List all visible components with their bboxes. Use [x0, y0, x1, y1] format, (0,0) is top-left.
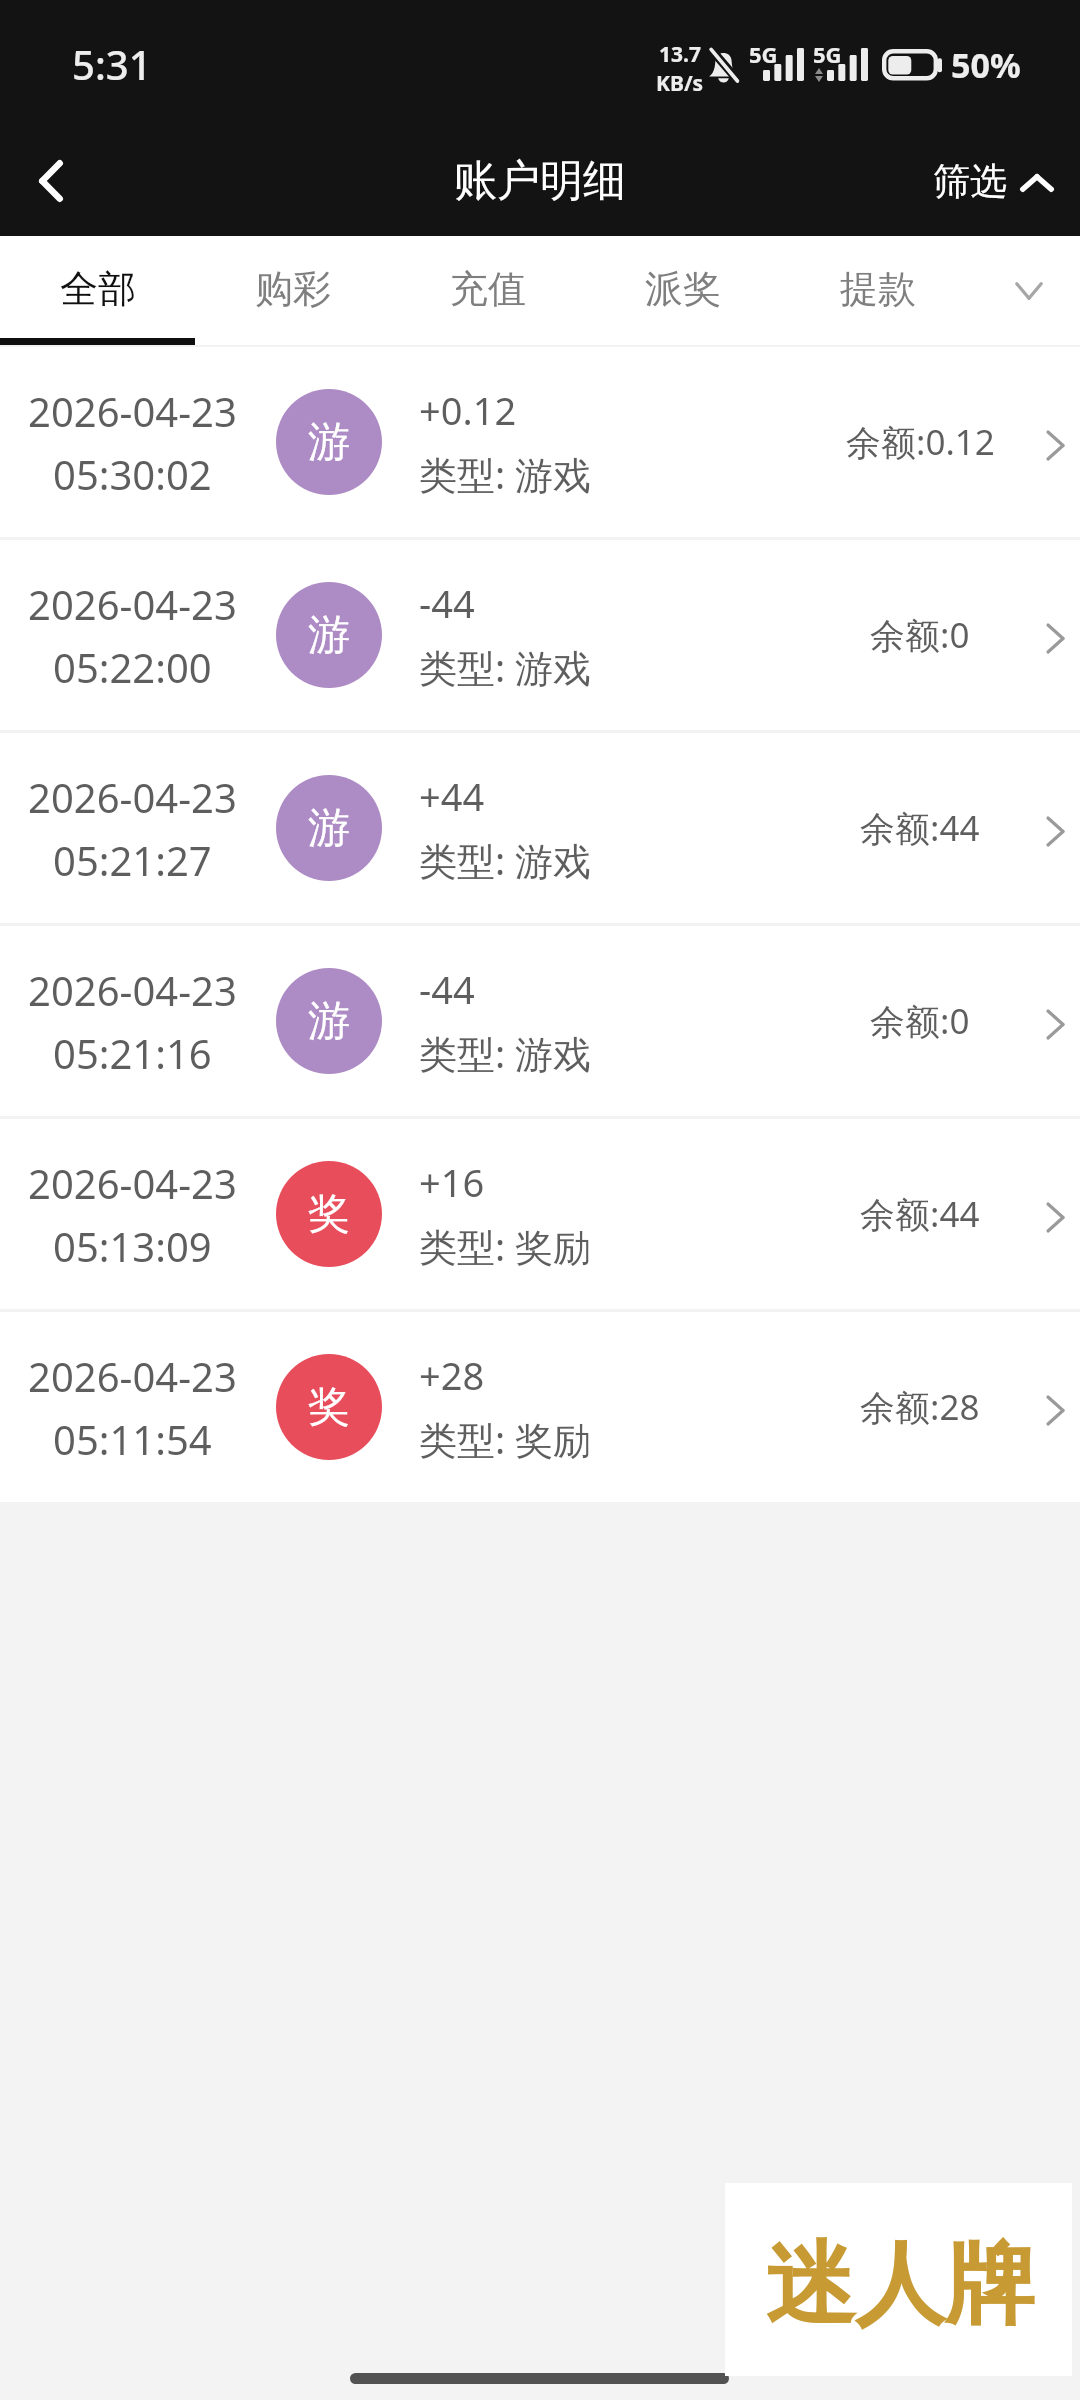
staticText: 5G: [749, 39, 778, 69]
staticText: 充值: [450, 265, 526, 313]
button[interactable]: 购彩: [195, 236, 390, 341]
staticText: 游: [308, 802, 350, 855]
staticText: -44: [419, 963, 475, 1015]
staticText: 05:21:27: [53, 833, 212, 887]
staticText: 余额:0: [870, 997, 970, 1045]
staticText: 提款: [840, 265, 916, 313]
staticText: 游: [308, 995, 350, 1048]
button[interactable]: 提款: [780, 236, 975, 341]
button[interactable]: 2026-04-23: [0, 347, 1080, 537]
staticText: 05:30:02: [53, 447, 212, 501]
staticText: 奖: [308, 1188, 350, 1241]
staticText: 类型: 游戏: [419, 448, 592, 500]
button[interactable]: Back: [0, 118, 110, 236]
staticText: 奖: [308, 1381, 350, 1434]
staticText: 类型: 游戏: [419, 1027, 592, 1079]
staticText: 05:11:54: [53, 1412, 212, 1466]
staticText: +28: [419, 1349, 485, 1401]
staticText: 05:21:16: [53, 1026, 212, 1080]
staticText: 2026-04-23: [28, 770, 237, 824]
staticText: 余额:44: [860, 804, 980, 852]
button[interactable]: 2026-04-23: [0, 733, 1080, 923]
button[interactable]: 2026-04-23: [0, 540, 1080, 730]
staticText: 余额:44: [860, 1190, 980, 1238]
staticText: KB/s: [656, 69, 704, 98]
button[interactable]: 筛选: [930, 118, 1080, 236]
staticText: 迷人牌: [765, 2228, 1035, 2341]
staticText: 类型: 游戏: [419, 641, 592, 693]
staticText: 派奖: [645, 265, 721, 313]
button[interactable]: 2026-04-23: [0, 1119, 1080, 1309]
button[interactable]: 充值: [390, 236, 585, 341]
staticText: 购彩: [255, 265, 331, 313]
staticText: 05:13:09: [53, 1219, 212, 1273]
staticText: 类型: 游戏: [419, 834, 592, 886]
staticText: 账户明细: [454, 154, 626, 208]
button[interactable]: 2026-04-23: [0, 1312, 1080, 1502]
button[interactable]: 2026-04-23: [0, 926, 1080, 1116]
staticText: 游: [308, 609, 350, 662]
staticText: 2026-04-23: [28, 963, 237, 1017]
staticText: 余额:28: [860, 1383, 980, 1431]
staticText: -44: [419, 577, 475, 629]
staticText: 游: [308, 416, 350, 469]
button[interactable]: Expand tabs: [975, 236, 1080, 341]
button[interactable]: 派奖: [585, 236, 780, 341]
staticText: 13.7: [659, 40, 701, 69]
staticText: 类型: 奖励: [419, 1413, 592, 1465]
staticText: 2026-04-23: [28, 384, 237, 438]
staticText: 2026-04-23: [28, 1156, 237, 1210]
staticText: 全部: [60, 265, 136, 313]
staticText: 5:31: [72, 37, 152, 91]
staticText: 余额:0: [870, 611, 970, 659]
staticText: +16: [419, 1156, 485, 1208]
staticText: 05:22:00: [53, 640, 212, 694]
staticText: +0.12: [419, 384, 517, 436]
staticText: 类型: 奖励: [419, 1220, 592, 1272]
button[interactable]: 全部: [0, 236, 195, 341]
staticText: 余额:0.12: [846, 418, 995, 466]
staticText: +44: [419, 770, 485, 822]
button[interactable]: Advertisement: [725, 2183, 1072, 2376]
staticText: 5G: [813, 39, 842, 69]
staticText: 2026-04-23: [28, 1349, 237, 1403]
staticText: 筛选: [933, 158, 1007, 205]
staticText: 50%: [951, 42, 1021, 88]
staticText: 2026-04-23: [28, 577, 237, 631]
